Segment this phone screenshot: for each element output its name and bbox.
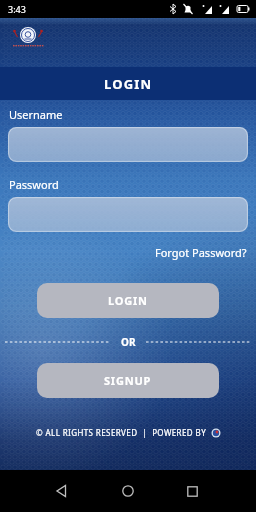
staticText: © ALL RIGHTS RESERVED | POWERED BY: [36, 427, 207, 438]
staticText: Password: [9, 177, 59, 192]
button[interactable]: [112, 475, 144, 507]
staticText: 3:43: [8, 3, 26, 15]
staticText: LOGIN: [104, 75, 153, 93]
button[interactable]: LOGIN: [37, 283, 219, 318]
staticText: LOGIN: [108, 293, 148, 308]
button[interactable]: SIGNUP: [37, 363, 219, 398]
staticText: Forgot Password?: [155, 245, 247, 260]
button[interactable]: [8, 197, 248, 232]
staticText: OR: [121, 335, 136, 349]
button[interactable]: [8, 127, 248, 162]
staticText: Username: [9, 107, 63, 122]
staticText: SIGNUP: [104, 373, 152, 388]
button[interactable]: [46, 475, 78, 507]
button[interactable]: [176, 475, 208, 507]
button[interactable]: Forgot Password?: [155, 245, 247, 260]
